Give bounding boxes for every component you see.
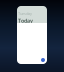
staticText: Tuesday (18, 11, 32, 16)
staticText: Today (18, 17, 33, 24)
button[interactable]: Compose (41, 58, 45, 62)
